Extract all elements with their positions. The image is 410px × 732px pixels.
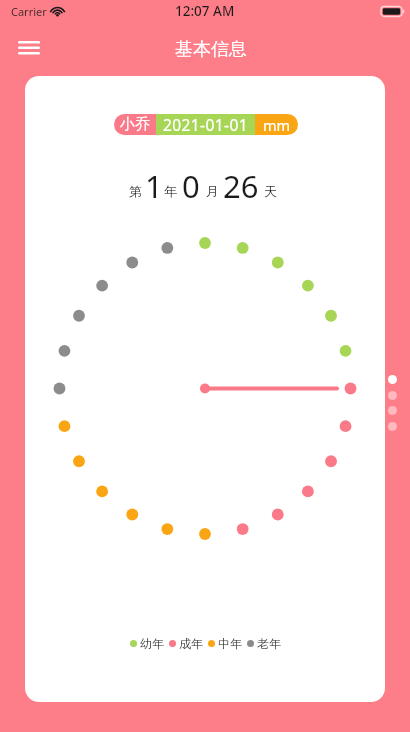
staticText: 基本信息 <box>175 38 247 61</box>
staticText: 第 <box>129 183 142 199</box>
staticText: 年 <box>164 183 177 199</box>
button[interactable]: Page 2 <box>388 391 397 400</box>
button[interactable]: 小乔 <box>114 114 298 135</box>
button[interactable]: Page 4 <box>388 422 397 431</box>
staticText: 0 <box>182 165 200 207</box>
button[interactable]: Menu <box>12 29 46 63</box>
staticText: 中年 <box>218 636 242 651</box>
staticText: 成年 <box>179 636 203 651</box>
staticText: 幼年 <box>140 636 164 651</box>
staticText: 12:07 AM <box>175 2 235 20</box>
button[interactable]: Page 1 <box>388 375 397 384</box>
staticText: 26 <box>223 165 259 207</box>
staticText: 老年 <box>257 636 281 651</box>
staticText: 月 <box>206 183 219 199</box>
staticText: 2021-01-01 <box>163 114 248 135</box>
button[interactable]: Page 3 <box>388 406 397 415</box>
staticText: 天 <box>264 183 277 199</box>
staticText: Carrier <box>11 4 47 19</box>
staticText: mm <box>263 115 291 135</box>
staticText: 1 <box>145 165 163 207</box>
staticText: 小乔 <box>120 115 150 134</box>
